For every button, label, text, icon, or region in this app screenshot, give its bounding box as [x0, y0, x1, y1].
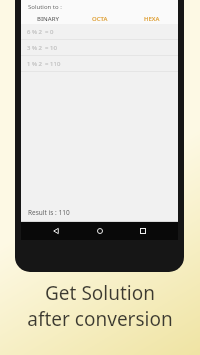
button[interactable]: 6 % 2 = 0: [21, 24, 178, 40]
button[interactable]: Result is : 110: [21, 204, 178, 221]
button[interactable]: HEXA: [126, 13, 178, 24]
button[interactable]: 1 % 2 = 110: [21, 56, 178, 72]
button[interactable]: BINARY: [21, 13, 74, 24]
staticText: 1 % 2 = 110: [27, 60, 61, 68]
staticText: after conversion: [27, 306, 173, 332]
staticText: OCTA: [92, 15, 108, 23]
button[interactable]: 3 % 2 = 10: [21, 40, 178, 56]
button[interactable]: Home: [92, 223, 108, 239]
button[interactable]: Back: [48, 223, 64, 239]
staticText: Solution to :: [28, 3, 62, 11]
button[interactable]: OCTA: [74, 13, 126, 24]
staticText: BINARY: [37, 15, 59, 23]
staticText: Get Solution: [45, 280, 155, 306]
staticText: Result is : 110: [28, 208, 70, 217]
button[interactable]: Recents: [135, 223, 151, 239]
staticText: 3 % 2 = 10: [27, 44, 57, 52]
staticText: 6 % 2 = 0: [27, 28, 54, 36]
staticText: HEXA: [144, 15, 160, 23]
